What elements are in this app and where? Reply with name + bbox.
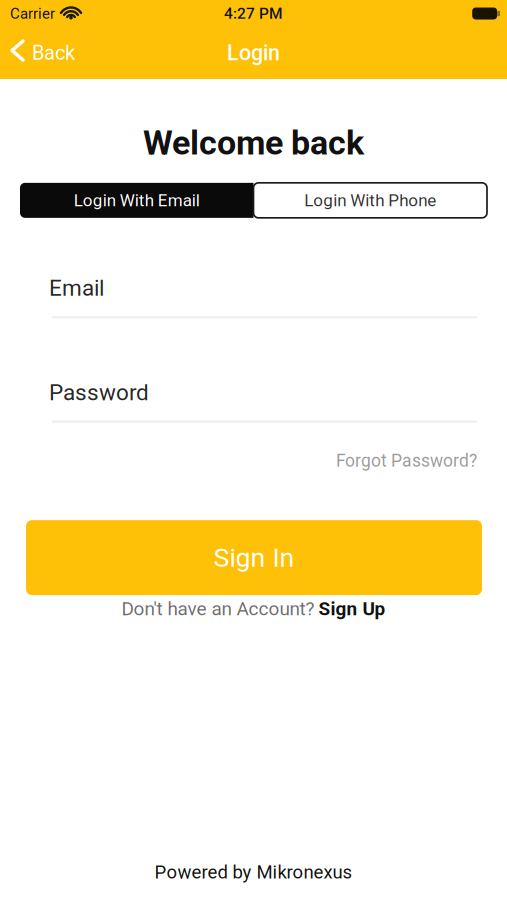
staticText: Sign Up xyxy=(318,598,385,620)
staticText: Carrier xyxy=(10,5,55,22)
button[interactable]: Login With Phone xyxy=(253,183,487,218)
staticText: Login xyxy=(227,40,280,66)
staticText: Sign In xyxy=(213,542,294,573)
staticText: Welcome back xyxy=(143,123,364,163)
staticText: Forgot Password? xyxy=(336,451,477,471)
staticText: Login With Phone xyxy=(304,190,436,210)
button[interactable]: Sign Up xyxy=(318,598,385,620)
button[interactable]: Back xyxy=(0,41,75,65)
staticText: Email xyxy=(49,275,104,301)
button[interactable]: Sign In xyxy=(26,520,482,595)
staticText: Don't have an Account? xyxy=(121,598,314,620)
staticText: Password xyxy=(49,379,149,406)
staticText: Login With Email xyxy=(74,190,200,210)
staticText: Back xyxy=(32,41,75,65)
button[interactable]: Forgot Password? xyxy=(336,451,477,471)
button[interactable]: Login With Email xyxy=(20,183,253,218)
staticText: 4:27 PM xyxy=(224,4,283,22)
staticText: Powered by Mikronexus xyxy=(154,861,352,883)
